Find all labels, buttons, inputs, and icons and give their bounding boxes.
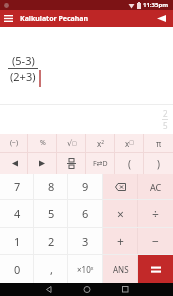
- staticText: (5-3): [12, 53, 35, 68]
- staticText: 11:35pm: [143, 1, 169, 9]
- button[interactable]: (−): [0, 134, 28, 152]
- button[interactable]: ANS: [103, 255, 138, 283]
- button[interactable]: +: [103, 228, 138, 254]
- staticText: ÷: [152, 206, 159, 222]
- button[interactable]: %: [28, 134, 57, 152]
- button[interactable]: [0, 10, 17, 27]
- staticText: +: [117, 233, 124, 249]
- staticText: √□: [67, 139, 77, 148]
- button[interactable]: π: [144, 134, 173, 152]
- button[interactable]: 7: [0, 174, 34, 199]
- button[interactable]: F⇄D: [86, 153, 115, 174]
- button[interactable]: [0, 283, 57, 296]
- staticText: 3: [82, 234, 89, 249]
- button[interactable]: 3: [68, 228, 103, 254]
- button[interactable]: 9: [68, 174, 103, 199]
- staticText: 1: [14, 234, 21, 249]
- button[interactable]: [57, 153, 86, 174]
- button[interactable]: −: [138, 228, 173, 254]
- staticText: 0: [14, 262, 21, 277]
- staticText: −: [152, 233, 159, 249]
- staticText: ): [157, 157, 160, 171]
- button[interactable]: x□: [115, 134, 144, 152]
- button[interactable]: ): [144, 153, 173, 174]
- staticText: x2: [97, 138, 105, 149]
- staticText: 6: [82, 206, 89, 221]
- staticText: 4: [14, 206, 21, 221]
- staticText: Kalkulator Pecahan: [20, 14, 89, 24]
- staticText: (: [128, 157, 131, 171]
- button[interactable]: x2: [86, 134, 115, 152]
- button[interactable]: [138, 255, 173, 283]
- staticText: π: [156, 138, 162, 149]
- staticText: F⇄D: [93, 159, 108, 169]
- staticText: 5: [163, 120, 168, 131]
- staticText: 2: [48, 234, 55, 249]
- button[interactable]: AC: [138, 174, 173, 199]
- button[interactable]: √□: [57, 134, 86, 152]
- staticText: ,: [50, 262, 53, 277]
- staticText: AC: [150, 181, 162, 193]
- button[interactable]: 1: [0, 228, 34, 254]
- button[interactable]: ×10x: [68, 255, 103, 283]
- staticText: 5: [48, 206, 55, 221]
- staticText: x□: [125, 138, 134, 149]
- button[interactable]: 4: [0, 200, 34, 227]
- button[interactable]: 2: [34, 228, 68, 254]
- button[interactable]: [28, 153, 57, 174]
- button[interactable]: ,: [34, 255, 68, 283]
- staticText: (2+3): [10, 69, 36, 84]
- staticText: 2: [163, 108, 168, 119]
- button[interactable]: (: [115, 153, 144, 174]
- button[interactable]: [57, 283, 115, 296]
- button[interactable]: [149, 10, 173, 27]
- staticText: %: [40, 138, 46, 148]
- button[interactable]: 8: [34, 174, 68, 199]
- button[interactable]: ×: [103, 200, 138, 227]
- button[interactable]: 5: [34, 200, 68, 227]
- staticText: 7: [14, 179, 21, 194]
- staticText: ×: [117, 206, 124, 222]
- button[interactable]: [115, 283, 173, 296]
- button[interactable]: 0: [0, 255, 34, 283]
- button[interactable]: 6: [68, 200, 103, 227]
- staticText: 9: [82, 179, 89, 194]
- button[interactable]: ÷: [138, 200, 173, 227]
- staticText: ANS: [113, 264, 129, 275]
- button[interactable]: [0, 153, 28, 174]
- button[interactable]: [103, 174, 138, 199]
- staticText: 8: [48, 179, 55, 194]
- staticText: (−): [10, 138, 19, 148]
- staticText: ×10x: [77, 264, 94, 275]
